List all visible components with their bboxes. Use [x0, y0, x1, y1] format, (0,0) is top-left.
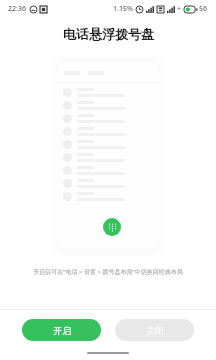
button[interactable]: Dialpad — [103, 218, 121, 236]
staticText: 56 — [199, 4, 208, 14]
staticText: 22:36 — [8, 4, 26, 14]
staticText: 开启 — [53, 325, 71, 336]
staticText: 1.15% — [113, 4, 133, 14]
button[interactable]: 开启 — [22, 319, 101, 341]
staticText: 关闭 — [146, 325, 164, 336]
button[interactable]: 关闭 — [115, 319, 194, 341]
staticText: 电话悬浮拨号盘 — [63, 26, 154, 42]
staticText: + — [177, 4, 182, 14]
staticText: 开启后可在“电话 > 设置 > 拨号盘布局”中切换回经典布局 — [33, 268, 183, 276]
